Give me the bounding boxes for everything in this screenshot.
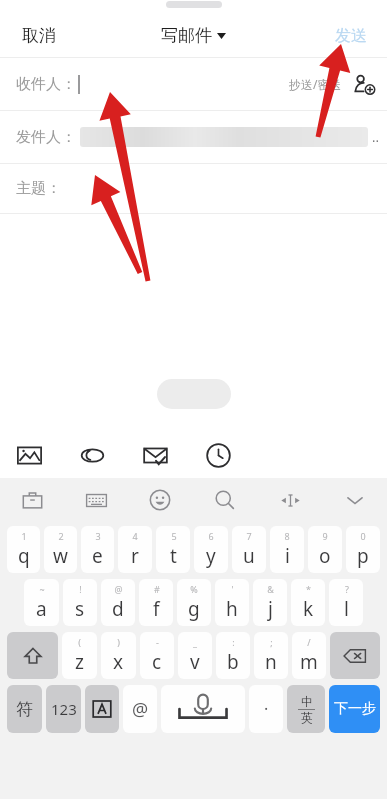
- button[interactable]: ): [101, 632, 136, 679]
- button[interactable]: 8: [270, 526, 304, 573]
- staticText: *: [306, 583, 311, 595]
- staticText: @: [132, 697, 149, 722]
- staticText: 5: [171, 530, 177, 542]
- button[interactable]: Read receipt: [138, 438, 172, 472]
- staticText: ?: [345, 583, 349, 595]
- staticText: v: [190, 649, 200, 675]
- button[interactable]: @: [101, 579, 135, 626]
- staticText: 2: [58, 530, 64, 542]
- staticText: @: [114, 583, 123, 595]
- button[interactable]: 收件人：: [0, 58, 387, 110]
- staticText: 英: [301, 710, 313, 725]
- staticText: 6: [208, 530, 214, 542]
- button[interactable]: 下一步: [329, 685, 380, 733]
- staticText: r: [131, 543, 139, 569]
- button[interactable]: #: [139, 579, 173, 626]
- button[interactable]: 写邮件: [153, 19, 234, 52]
- staticText: w: [53, 543, 68, 569]
- button[interactable]: %: [177, 579, 211, 626]
- staticText: ': [231, 583, 234, 595]
- staticText: l: [344, 596, 349, 622]
- staticText: i: [285, 543, 290, 569]
- staticText: f: [153, 596, 160, 622]
- staticText: y: [206, 543, 216, 569]
- button[interactable]: _: [178, 632, 212, 679]
- staticText: _: [193, 636, 197, 648]
- staticText: 主题：: [16, 179, 61, 198]
- staticText: 符: [16, 699, 33, 720]
- button[interactable]: 7: [232, 526, 266, 573]
- button[interactable]: 9: [308, 526, 342, 573]
- button[interactable]: Space: [161, 685, 245, 733]
- button[interactable]: 1: [7, 526, 40, 573]
- button[interactable]: ;: [254, 632, 288, 679]
- staticText: 8: [284, 530, 290, 542]
- staticText: 7: [246, 530, 252, 542]
- button[interactable]: !: [63, 579, 97, 626]
- staticText: q: [18, 543, 30, 569]
- staticText: 写邮件: [161, 25, 212, 46]
- button[interactable]: 符: [7, 685, 42, 733]
- staticText: 下一步: [334, 700, 376, 718]
- button[interactable]: Search: [208, 483, 242, 517]
- staticText: !: [79, 583, 82, 595]
- button[interactable]: -: [140, 632, 174, 679]
- button[interactable]: 0: [346, 526, 380, 573]
- button[interactable]: Emoji: [143, 483, 177, 517]
- staticText: e: [92, 543, 103, 569]
- button[interactable]: Keyboard settings: [79, 483, 113, 517]
- staticText: b: [227, 649, 239, 675]
- button[interactable]: *: [291, 579, 325, 626]
- staticText: :: [232, 636, 235, 648]
- button[interactable]: 123: [46, 685, 81, 733]
- button[interactable]: ·: [249, 685, 283, 733]
- staticText: 1: [21, 530, 27, 542]
- staticText: m: [300, 649, 318, 675]
- button[interactable]: Backspace: [330, 632, 380, 679]
- staticText: 取消: [22, 25, 56, 46]
- staticText: %: [190, 583, 198, 595]
- staticText: h: [226, 596, 238, 622]
- staticText: u: [243, 543, 255, 569]
- button[interactable]: Clipboard: [15, 483, 49, 517]
- button[interactable]: 5: [156, 526, 190, 573]
- button[interactable]: 中: [287, 685, 325, 733]
- button[interactable]: Signature: [75, 438, 109, 472]
- button[interactable]: Hide keyboard: [338, 483, 372, 517]
- button[interactable]: 3: [81, 526, 114, 573]
- button[interactable]: ~: [24, 579, 59, 626]
- staticText: z: [75, 649, 84, 675]
- button[interactable]: 发送: [329, 20, 373, 52]
- staticText: c: [152, 649, 162, 675]
- staticText: ..: [372, 128, 379, 146]
- button[interactable]: Cursor move: [273, 483, 307, 517]
- button[interactable]: /: [292, 632, 326, 679]
- button[interactable]: 6: [194, 526, 228, 573]
- staticText: 收件人：: [16, 75, 76, 94]
- button[interactable]: ?: [329, 579, 363, 626]
- staticText: 3: [95, 530, 101, 542]
- button[interactable]: 发件人：: [0, 111, 387, 163]
- staticText: /: [307, 636, 311, 648]
- button[interactable]: 4: [118, 526, 152, 573]
- button[interactable]: 2: [44, 526, 77, 573]
- button[interactable]: Switch language: [85, 685, 119, 733]
- button[interactable]: 主题：: [0, 164, 387, 213]
- staticText: x: [113, 649, 124, 675]
- button[interactable]: Insert image: [12, 438, 46, 472]
- staticText: 抄送/密送: [289, 76, 342, 92]
- staticText: p: [357, 543, 369, 569]
- staticText: ): [117, 636, 120, 648]
- button[interactable]: Schedule send: [201, 438, 235, 472]
- button[interactable]: :: [216, 632, 250, 679]
- staticText: a: [36, 596, 47, 622]
- button[interactable]: ': [215, 579, 249, 626]
- staticText: &: [267, 583, 274, 595]
- staticText: #: [154, 583, 160, 595]
- button[interactable]: 取消: [16, 19, 62, 52]
- button[interactable]: &: [253, 579, 287, 626]
- button[interactable]: Add contact: [351, 71, 377, 97]
- button[interactable]: (: [62, 632, 97, 679]
- button[interactable]: @: [123, 685, 157, 733]
- button[interactable]: Shift: [7, 632, 58, 679]
